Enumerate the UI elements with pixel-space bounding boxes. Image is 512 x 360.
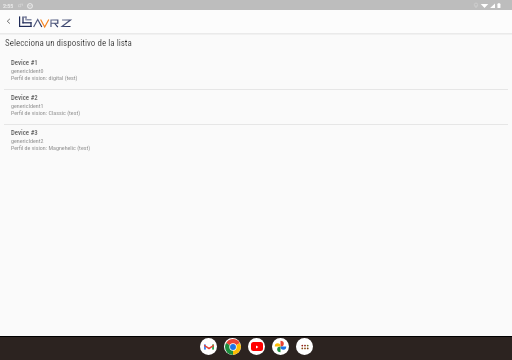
- button[interactable]: Device #1: [0, 55, 512, 89]
- button[interactable]: YouTube: [248, 338, 265, 355]
- staticText: Device #2: [11, 94, 38, 102]
- button[interactable]: Back: [1, 14, 16, 29]
- staticText: Device #3: [11, 129, 38, 137]
- staticText: Perfil de vision: digital (test): [11, 74, 78, 81]
- button[interactable]: Device #2: [0, 90, 512, 124]
- button[interactable]: Photos: [272, 338, 289, 355]
- staticText: Device #1: [11, 59, 38, 67]
- button[interactable]: AVRZ: [19, 10, 72, 30]
- staticText: Perfil de vision: Classic (test): [11, 109, 81, 116]
- button[interactable]: Device #3: [0, 125, 512, 159]
- staticText: genericIdent1: [11, 102, 44, 109]
- staticText: 2:55: [3, 2, 14, 9]
- button[interactable]: Chrome: [224, 338, 241, 355]
- staticText: genericIdent0: [11, 67, 44, 74]
- button[interactable]: All apps: [296, 338, 313, 355]
- staticText: genericIdent2: [11, 137, 44, 144]
- staticText: Perfil de vision: Magnehelic (test): [11, 144, 91, 151]
- staticText: Selecciona un dispositivo de la lista: [5, 38, 132, 49]
- button[interactable]: Gmail: [200, 338, 217, 355]
